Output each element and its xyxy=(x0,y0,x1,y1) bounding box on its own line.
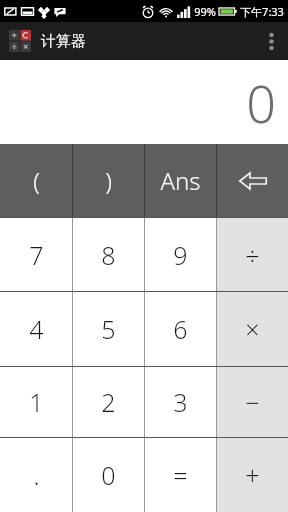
staticText: ÷ xyxy=(245,238,260,272)
button[interactable]: 4 xyxy=(0,292,72,366)
button[interactable]: 2 xyxy=(73,367,144,437)
staticText: 6 xyxy=(173,312,188,346)
button[interactable]: − xyxy=(217,367,288,437)
button[interactable]: = xyxy=(145,438,216,512)
staticText: 0 xyxy=(101,458,116,492)
staticText: 7 xyxy=(29,238,44,272)
button[interactable]: 1 xyxy=(0,367,72,437)
staticText: 计算器 xyxy=(41,32,86,51)
staticText: Ans xyxy=(160,164,201,197)
staticText: − xyxy=(245,385,260,419)
staticText: 3 xyxy=(173,385,188,419)
button[interactable]: 5 xyxy=(73,292,144,366)
staticText: 8 xyxy=(101,238,116,272)
staticText: 4 xyxy=(29,312,44,346)
button[interactable]: 9 xyxy=(145,218,216,291)
button[interactable]: × xyxy=(217,292,288,366)
button[interactable]: 3 xyxy=(145,367,216,437)
button[interactable]: Ans xyxy=(145,144,216,217)
staticText: . xyxy=(33,458,40,492)
staticText: 下午7:33 xyxy=(240,4,284,19)
staticText: ( xyxy=(33,164,40,197)
staticText: 9 xyxy=(173,238,188,272)
button[interactable]: More options xyxy=(254,22,288,60)
button[interactable]: 8 xyxy=(73,218,144,291)
staticText: + xyxy=(245,458,260,492)
staticText: × xyxy=(245,312,260,346)
button[interactable]: . xyxy=(0,438,72,512)
staticText: 0 xyxy=(246,67,276,138)
staticText: 2 xyxy=(101,385,116,419)
staticText: ) xyxy=(105,164,112,197)
button[interactable]: Backspace xyxy=(217,144,288,217)
staticText: = xyxy=(173,458,188,492)
staticText: 5 xyxy=(101,312,116,346)
button[interactable]: ) xyxy=(73,144,144,217)
button[interactable]: 7 xyxy=(0,218,72,291)
button[interactable]: ( xyxy=(0,144,72,217)
staticText: 1 xyxy=(29,385,44,419)
button[interactable]: 6 xyxy=(145,292,216,366)
button[interactable]: + xyxy=(217,438,288,512)
staticText: 99% xyxy=(194,4,216,19)
button[interactable]: ÷ xyxy=(217,218,288,291)
button[interactable]: 0 xyxy=(73,438,144,512)
